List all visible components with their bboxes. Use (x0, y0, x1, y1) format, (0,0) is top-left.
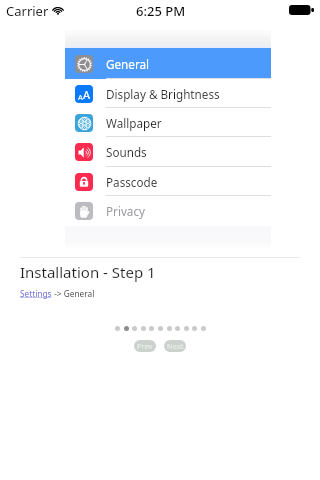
button[interactable] (192, 326, 197, 331)
staticText: A (78, 92, 83, 102)
button[interactable]: Privacy (65, 196, 271, 226)
button[interactable]: Wallpaper (65, 108, 271, 137)
button[interactable]: Settings (20, 288, 52, 299)
button[interactable] (149, 326, 154, 331)
button[interactable]: Prev (134, 340, 156, 352)
button[interactable] (184, 326, 189, 331)
staticText: General (106, 56, 150, 72)
staticText: Passcode (106, 174, 158, 190)
button[interactable]: Passcode (65, 167, 271, 196)
staticText: Sounds (106, 144, 147, 160)
staticText: Prev (137, 341, 153, 351)
button[interactable] (115, 326, 120, 331)
button[interactable] (132, 326, 137, 331)
button[interactable]: A (65, 79, 271, 108)
staticText: Privacy (106, 203, 145, 219)
staticText: Wallpaper (106, 115, 162, 131)
staticText: 6:25 PM (136, 2, 186, 20)
button[interactable]: Next (164, 340, 186, 352)
button[interactable]: Sounds (65, 137, 271, 167)
button[interactable] (158, 326, 163, 331)
staticText: Installation - Step 1 (20, 262, 156, 282)
button[interactable] (124, 326, 129, 331)
staticText: Next (167, 341, 184, 351)
staticText: Carrier (6, 2, 49, 20)
staticText: Display & Brightness (106, 86, 220, 102)
button[interactable]: General (65, 48, 271, 79)
button[interactable] (175, 326, 180, 331)
button[interactable] (167, 326, 172, 331)
button[interactable] (141, 326, 146, 331)
button[interactable] (201, 326, 206, 331)
staticText: -> General (52, 288, 95, 299)
staticText: A (83, 87, 91, 102)
